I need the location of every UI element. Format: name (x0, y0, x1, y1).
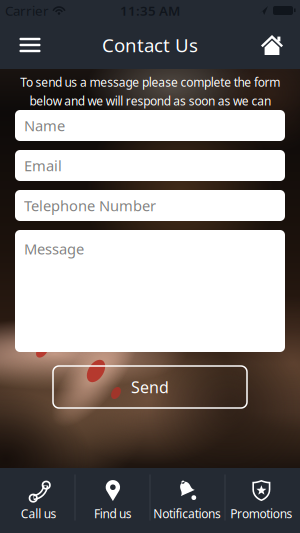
staticText: Notifications (153, 505, 221, 521)
button[interactable]: Notifications (150, 468, 224, 533)
button[interactable]: Home (254, 27, 290, 63)
button[interactable]: Name (15, 110, 285, 141)
button[interactable]: Telephone Number (15, 190, 285, 221)
staticText: Message (24, 239, 84, 258)
staticText: Telephone Number (24, 196, 156, 215)
staticText: Find us (94, 505, 132, 521)
staticText: Send (131, 376, 169, 398)
staticText: 11:35 AM (120, 2, 180, 19)
staticText: Email (24, 156, 62, 175)
button[interactable]: Send (53, 366, 247, 408)
button[interactable]: Email (15, 150, 285, 181)
button[interactable]: Menu (12, 27, 48, 63)
staticText: Name (24, 116, 65, 135)
staticText: Call us (21, 505, 56, 521)
staticText: Contact Us (102, 33, 198, 57)
staticText: Carrier (5, 2, 49, 19)
button[interactable]: Message (15, 230, 285, 352)
staticText: To send us a message please complete the… (20, 74, 280, 109)
button[interactable]: Promotions (224, 468, 298, 533)
button[interactable]: Find us (76, 468, 150, 533)
staticText: Promotions (230, 505, 292, 521)
button[interactable]: Call us (1, 468, 76, 533)
